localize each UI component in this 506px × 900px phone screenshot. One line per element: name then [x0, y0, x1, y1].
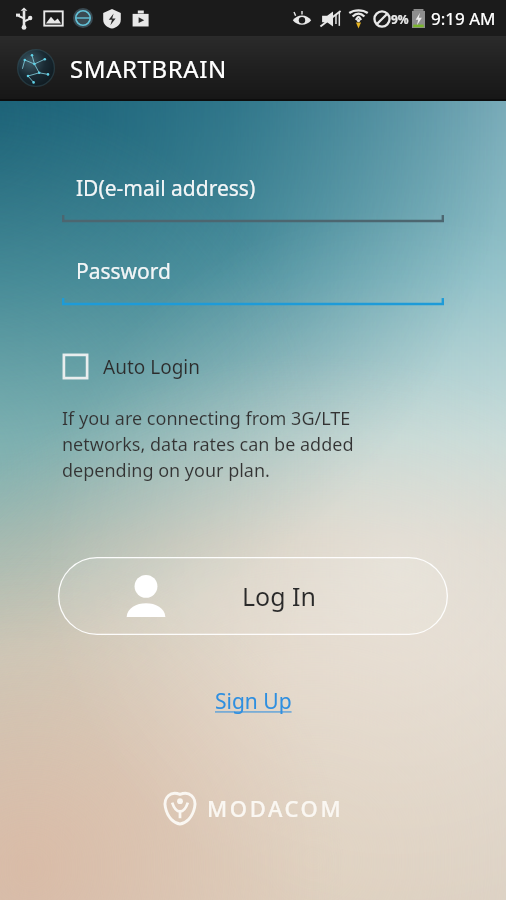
staticText: 9:19 AM: [431, 7, 496, 30]
button[interactable]: Password: [62, 257, 444, 309]
staticText: ID(e-mail address): [76, 174, 256, 203]
staticText: MODACOM: [207, 793, 344, 823]
staticText: Log In: [242, 579, 317, 613]
staticText: If you are connecting from 3G/LTE networ…: [62, 406, 354, 483]
staticText: Auto Login: [103, 354, 200, 380]
button[interactable]: Log In: [58, 557, 448, 635]
staticText: 9%: [391, 11, 409, 27]
button[interactable]: ID(e-mail address): [62, 174, 444, 226]
button[interactable]: Sign Up: [215, 687, 292, 716]
staticText: Password: [76, 257, 171, 286]
button[interactable]: Auto Login: [62, 353, 200, 380]
staticText: Sign Up: [215, 687, 292, 716]
staticText: SMARTBRAIN: [70, 52, 227, 85]
